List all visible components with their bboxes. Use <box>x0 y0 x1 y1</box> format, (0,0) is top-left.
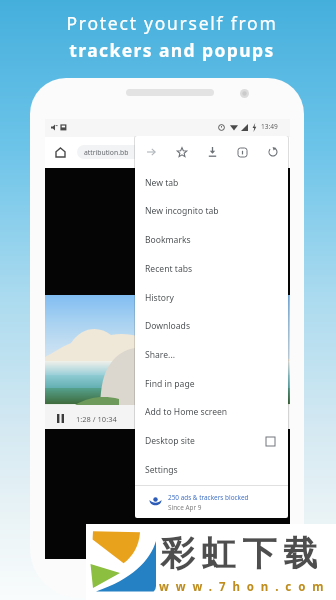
button[interactable]: 7hon logo <box>88 528 156 594</box>
button[interactable]: New tab <box>135 168 288 197</box>
button[interactable]: Downloads <box>135 311 288 340</box>
staticText: attribution.bb <box>84 148 129 157</box>
staticText: trackers and popups <box>4 38 336 62</box>
button[interactable]: Forward <box>141 139 163 165</box>
staticText: Protect yourself from <box>4 11 336 35</box>
staticText: 彩虹下载 <box>157 532 321 575</box>
staticText: Recent tabs <box>145 263 193 275</box>
staticText: 13:49 <box>261 122 278 131</box>
button[interactable]: Desktop site <box>135 426 288 455</box>
button[interactable]: Find in page <box>135 369 288 398</box>
staticText: Settings <box>145 464 178 476</box>
button[interactable]: Settings <box>135 455 288 484</box>
staticText: History <box>145 292 174 304</box>
button[interactable]: Add to Home screen <box>135 397 288 426</box>
button[interactable]: History <box>135 283 288 312</box>
staticText: Downloads <box>145 320 191 332</box>
button[interactable]: Bookmark <box>172 139 194 165</box>
staticText: Add to Home screen <box>145 406 228 418</box>
button[interactable]: Bookmarks <box>135 225 288 254</box>
staticText: Desktop site <box>145 435 195 447</box>
button[interactable] <box>77 145 207 159</box>
staticText: Find in page <box>145 378 195 390</box>
staticText: 250 ads & trackers blocked <box>168 493 249 502</box>
staticText: Bookmarks <box>145 234 191 246</box>
staticText: www.7hon.com <box>159 579 331 595</box>
button[interactable] <box>135 486 288 518</box>
button[interactable]: Recent tabs <box>135 254 288 283</box>
staticText: Since Apr 9 <box>168 503 202 512</box>
staticText: Share... <box>145 349 175 361</box>
staticText: 1:28 / 10:34 <box>76 414 117 424</box>
button[interactable]: Download <box>202 139 224 165</box>
button[interactable]: Home <box>50 142 70 162</box>
staticText: New incognito tab <box>145 205 219 217</box>
button[interactable]: Page info <box>232 139 254 165</box>
button[interactable]: New incognito tab <box>135 196 288 225</box>
button[interactable]: Reload <box>262 139 284 165</box>
button[interactable]: Share... <box>135 340 288 369</box>
staticText: New tab <box>145 177 179 189</box>
